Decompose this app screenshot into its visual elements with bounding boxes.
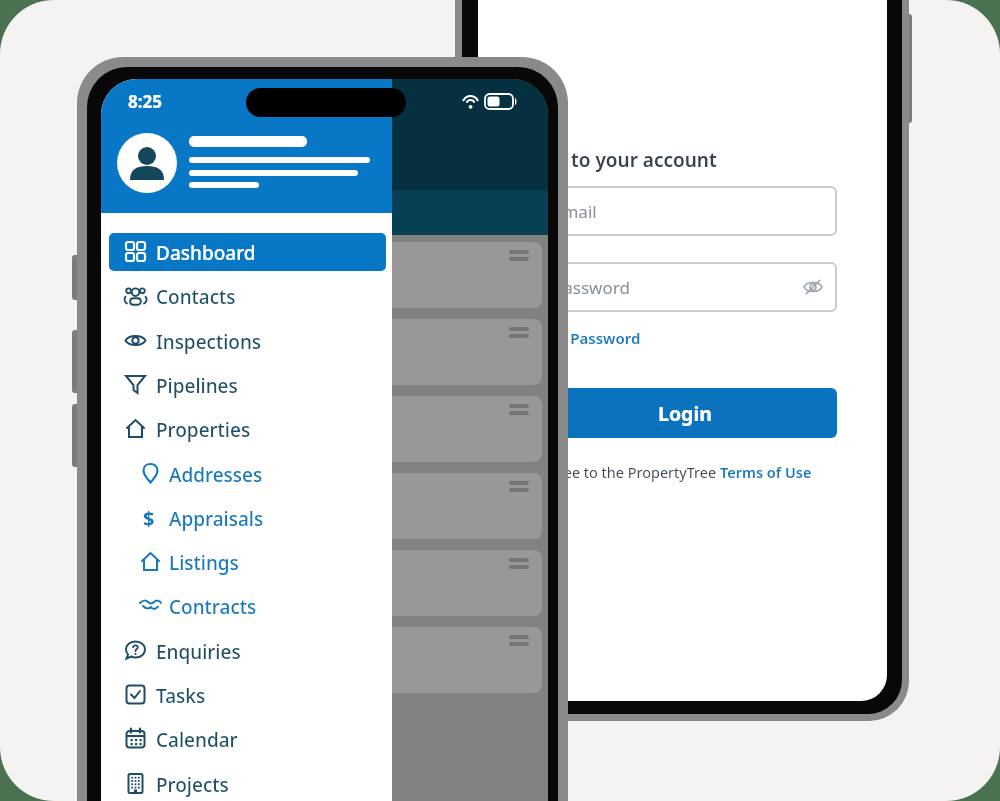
button[interactable]: Contracts (109, 587, 386, 625)
button[interactable]: Tasks (109, 676, 386, 714)
button[interactable]: Addresses (109, 455, 386, 493)
button[interactable]: Password (537, 262, 837, 312)
button[interactable]: Pipelines (109, 366, 386, 404)
staticText: Tasks (156, 683, 206, 709)
staticText: Login (658, 400, 712, 427)
button[interactable]: Login (533, 388, 837, 438)
button[interactable]: Terms of Use (720, 462, 812, 482)
staticText: Password (553, 276, 630, 299)
button[interactable]: Projects (109, 765, 386, 801)
button[interactable]: $ (109, 499, 386, 537)
staticText: 8:25 (128, 90, 162, 113)
staticText: Pipelines (156, 373, 238, 399)
button[interactable]: Email (537, 186, 837, 236)
staticText: Listings (169, 550, 239, 576)
staticText: $ (143, 505, 155, 532)
button[interactable]: Inspections (109, 322, 386, 360)
button[interactable]: Forgot Password (518, 328, 641, 348)
button[interactable]: Calendar (109, 720, 386, 758)
staticText: Properties (156, 417, 251, 443)
button[interactable]: Enquiries (109, 632, 386, 670)
staticText: ree to the PropertyTree (558, 462, 720, 482)
staticText: Calendar (156, 727, 238, 753)
button[interactable]: Listings (109, 543, 386, 581)
staticText: Appraisals (169, 506, 264, 532)
staticText: Addresses (169, 462, 263, 488)
staticText: Contracts (169, 594, 257, 620)
staticText: Inspections (156, 329, 262, 355)
button[interactable]: Contacts (109, 277, 386, 315)
staticText: Contacts (156, 284, 236, 310)
staticText: to your account (571, 147, 717, 173)
staticText: Dashboard (156, 240, 256, 266)
staticText: Projects (156, 772, 229, 798)
button[interactable]: Dashboard (109, 233, 386, 271)
staticText: Email (553, 200, 597, 223)
staticText: Enquiries (156, 639, 241, 665)
button[interactable]: Properties (109, 410, 386, 448)
